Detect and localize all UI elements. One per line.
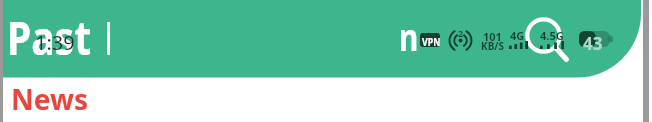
staticText: n bbox=[399, 10, 418, 62]
staticText: 4G bbox=[510, 28, 525, 43]
staticText: 101 bbox=[483, 29, 502, 44]
staticText: 2 bbox=[458, 27, 464, 39]
staticText: 4.5G bbox=[540, 28, 564, 43]
staticText: 43 bbox=[583, 32, 603, 55]
staticText: Past bbox=[7, 5, 92, 69]
staticText: KB/S bbox=[481, 39, 504, 53]
staticText: News bbox=[11, 80, 88, 118]
staticText: VPN bbox=[422, 34, 440, 49]
staticText: 1:39 bbox=[35, 29, 75, 56]
button[interactable]: Search bbox=[520, 12, 572, 64]
